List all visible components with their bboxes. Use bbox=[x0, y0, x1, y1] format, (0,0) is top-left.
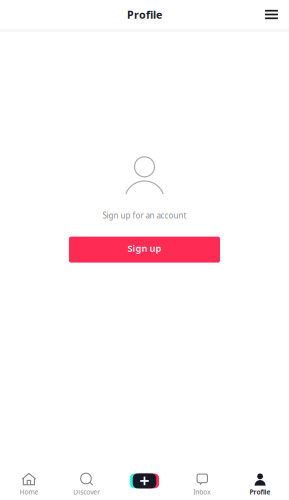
button[interactable]: Inbox bbox=[173, 452, 231, 500]
button[interactable]: Menu bbox=[254, 0, 289, 28]
staticText: Sign up for an account bbox=[102, 210, 186, 221]
staticText: Profile bbox=[250, 488, 271, 496]
staticText: Profile bbox=[127, 7, 162, 22]
button[interactable]: Create bbox=[116, 452, 173, 500]
staticText: Inbox bbox=[193, 488, 211, 496]
button[interactable]: Home bbox=[0, 452, 58, 500]
staticText: Home bbox=[19, 488, 38, 496]
staticText: Sign up bbox=[127, 242, 161, 254]
staticText: Discover bbox=[73, 488, 100, 496]
button[interactable]: Profile bbox=[231, 452, 289, 500]
button[interactable]: Discover bbox=[58, 452, 116, 500]
button[interactable]: Sign up bbox=[69, 237, 220, 263]
